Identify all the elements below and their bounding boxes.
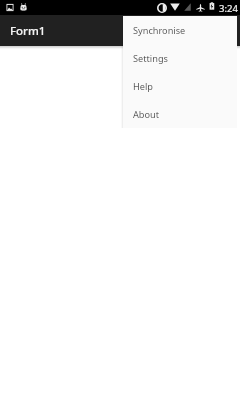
staticText: 3:24 [219, 2, 238, 15]
staticText: Synchronise [133, 24, 186, 37]
staticText: Settings [133, 52, 168, 65]
button[interactable]: Help [123, 72, 237, 100]
button[interactable]: More options [216, 19, 240, 43]
button[interactable]: About [123, 100, 237, 128]
button[interactable]: Synchronise [123, 16, 237, 44]
button[interactable]: Settings [123, 44, 237, 72]
staticText: Help [133, 80, 154, 93]
staticText: About [133, 108, 160, 121]
staticText: Form1 [10, 23, 46, 39]
